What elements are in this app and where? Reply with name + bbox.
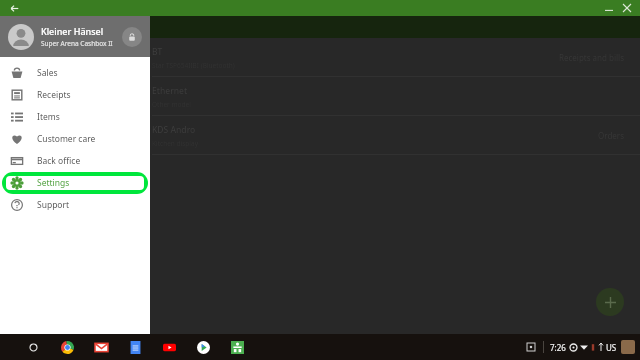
button[interactable]: Ethernet xyxy=(0,77,640,116)
staticText: Receipts and bills xyxy=(559,52,624,63)
button[interactable]: Settings xyxy=(0,172,150,194)
button[interactable]: Support xyxy=(0,194,150,216)
button[interactable]: Docs xyxy=(126,338,144,356)
button[interactable]: Back office xyxy=(0,150,150,172)
staticText: Items xyxy=(37,111,60,123)
button[interactable]: Gmail xyxy=(92,338,110,356)
staticText: Support xyxy=(37,199,70,211)
button[interactable]: Status tray xyxy=(550,340,635,354)
button[interactable]: App xyxy=(228,338,246,356)
button[interactable]: Lock xyxy=(122,27,142,47)
button[interactable]: Add xyxy=(596,288,624,316)
staticText: Settings xyxy=(37,177,70,189)
staticText: Kleiner Hänsel xyxy=(41,25,104,37)
staticText: US xyxy=(606,342,617,353)
staticText: Super Arena Cashbox II xyxy=(41,39,113,48)
button[interactable]: Minimize xyxy=(602,1,616,15)
staticText: 7:26 xyxy=(550,342,566,353)
staticText: KDS Andro xyxy=(152,124,196,136)
button[interactable]: Items xyxy=(0,106,150,128)
staticText: Back office xyxy=(37,155,81,167)
button[interactable]: Sales xyxy=(0,62,150,84)
staticText: Ethernet xyxy=(152,85,188,97)
button[interactable]: Customer care xyxy=(0,128,150,150)
button[interactable]: Chrome xyxy=(58,338,76,356)
staticText: Customer care xyxy=(37,133,96,145)
button[interactable]: KDS Andro xyxy=(0,116,640,155)
staticText: BT xyxy=(152,46,163,58)
button[interactable]: Screenshot xyxy=(523,339,539,355)
button[interactable]: BT xyxy=(0,38,640,77)
button[interactable]: Back xyxy=(6,0,22,16)
button[interactable]: Close xyxy=(620,1,634,15)
staticText: Sales xyxy=(37,67,58,79)
button[interactable]: Play Store xyxy=(194,338,212,356)
button[interactable]: YouTube xyxy=(160,338,178,356)
staticText: Orders xyxy=(598,130,624,141)
button[interactable]: Kleiner Hänsel xyxy=(0,16,150,57)
staticText: Receipts xyxy=(37,89,71,101)
button[interactable]: Launcher xyxy=(24,338,42,356)
button[interactable]: Receipts xyxy=(0,84,150,106)
